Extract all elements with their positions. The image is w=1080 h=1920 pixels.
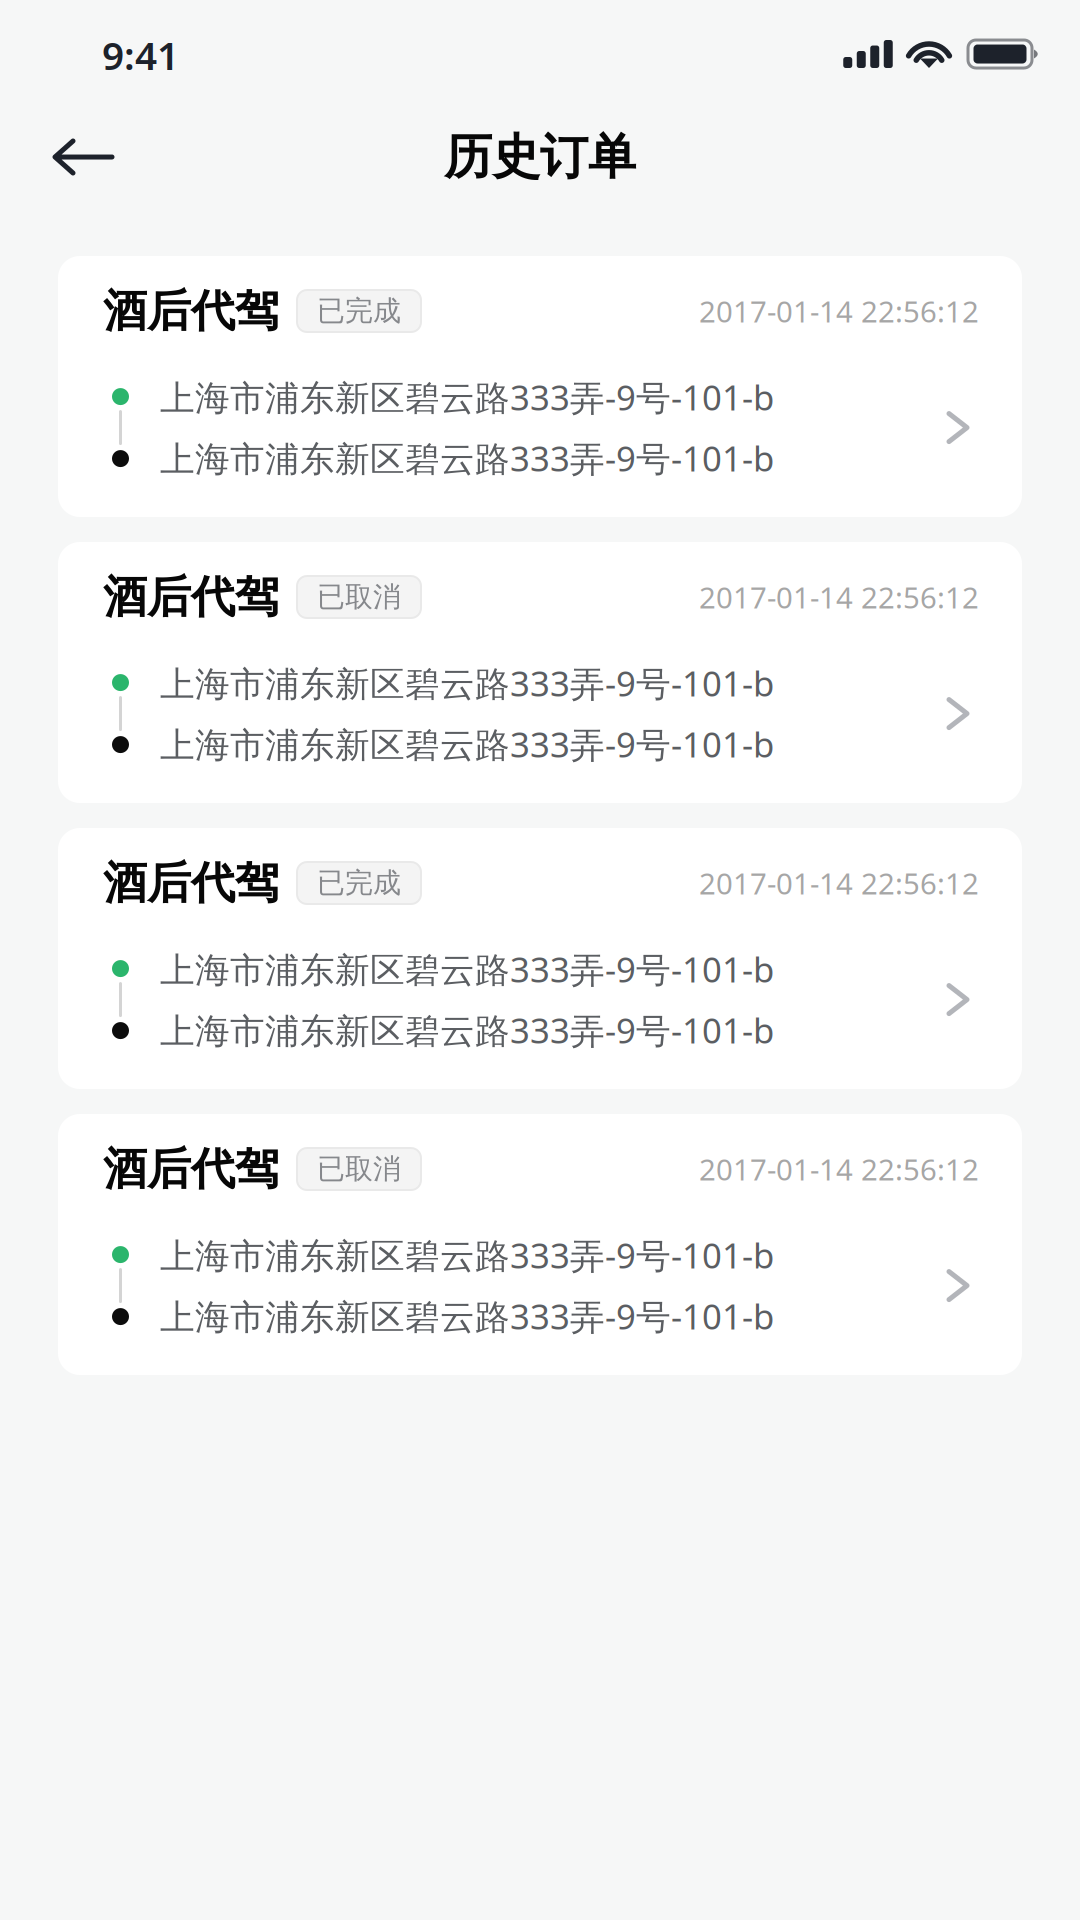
staticText: 上海市浦东新区碧云路333弄-9号-101-b [160, 660, 774, 706]
staticText: 酒后代驾 [103, 856, 279, 910]
staticText: 酒后代驾 [103, 570, 279, 624]
staticText: 上海市浦东新区碧云路333弄-9号-101-b [160, 1007, 774, 1053]
staticText: 历史订单 [444, 127, 636, 186]
staticText: 上海市浦东新区碧云路333弄-9号-101-b [160, 374, 774, 420]
button[interactable]: 酒后代驾 [58, 1114, 1022, 1375]
staticText: 2017-01-14 22:56:12 [699, 863, 979, 902]
button[interactable]: 酒后代驾 [58, 256, 1022, 517]
staticText: 已取消 [317, 580, 401, 614]
button[interactable]: Back [0, 107, 150, 207]
staticText: 已取消 [317, 1152, 401, 1186]
staticText: 酒后代驾 [103, 284, 279, 338]
button[interactable]: 酒后代驾 [58, 828, 1022, 1089]
staticText: 已完成 [317, 866, 401, 900]
button[interactable]: 酒后代驾 [58, 542, 1022, 803]
staticText: 上海市浦东新区碧云路333弄-9号-101-b [160, 1293, 774, 1339]
staticText: 2017-01-14 22:56:12 [699, 291, 979, 330]
staticText: 2017-01-14 22:56:12 [699, 1149, 979, 1188]
staticText: 已完成 [317, 294, 401, 328]
staticText: 酒后代驾 [103, 1142, 279, 1196]
staticText: 上海市浦东新区碧云路333弄-9号-101-b [160, 435, 774, 481]
staticText: 上海市浦东新区碧云路333弄-9号-101-b [160, 1232, 774, 1278]
staticText: 上海市浦东新区碧云路333弄-9号-101-b [160, 721, 774, 767]
staticText: 上海市浦东新区碧云路333弄-9号-101-b [160, 946, 774, 992]
staticText: 2017-01-14 22:56:12 [699, 577, 979, 616]
staticText: 9:41 [102, 29, 179, 81]
